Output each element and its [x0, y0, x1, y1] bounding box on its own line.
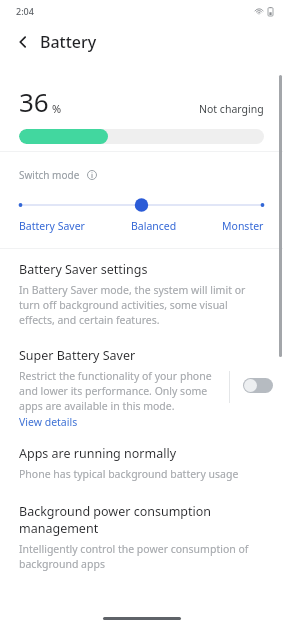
staticText: Restrict the functionality of your phone… [19, 369, 223, 413]
staticText: % [52, 101, 62, 116]
staticText: Switch mode [19, 168, 80, 182]
button[interactable]: Balanced [131, 219, 177, 233]
staticText: Balanced [131, 219, 177, 233]
button[interactable]: Background power consumption management [0, 501, 283, 573]
staticText: Phone has typical background battery usa… [19, 467, 239, 481]
staticText: Battery [40, 31, 97, 53]
staticText: Not charging [199, 102, 264, 116]
button[interactable]: Apps are running normally [0, 443, 283, 483]
staticText: In Battery Saver mode, the system will l… [19, 283, 264, 327]
staticText: Monster [222, 219, 264, 233]
staticText: 2:04 [16, 5, 34, 17]
staticText: 36 [19, 84, 49, 119]
button[interactable]: Info about switch mode [84, 167, 100, 183]
staticText: Apps are running normally [19, 445, 177, 462]
staticText: Background power consumption management [19, 503, 264, 537]
staticText: Battery Saver settings [19, 261, 148, 278]
staticText: Intelligently control the power consumpt… [19, 542, 264, 571]
button[interactable]: View details [19, 413, 78, 429]
button[interactable]: Super Battery Saver [0, 347, 283, 429]
staticText: Battery Saver [19, 219, 85, 233]
button[interactable]: Back [8, 27, 38, 57]
button[interactable]: Battery Saver settings [0, 259, 283, 329]
staticText: View details [19, 415, 78, 429]
button[interactable]: Monster [222, 219, 264, 233]
button[interactable]: Battery Saver [19, 219, 85, 233]
staticText: Super Battery Saver [19, 347, 136, 364]
button[interactable]: Super Battery Saver toggle [243, 378, 273, 393]
